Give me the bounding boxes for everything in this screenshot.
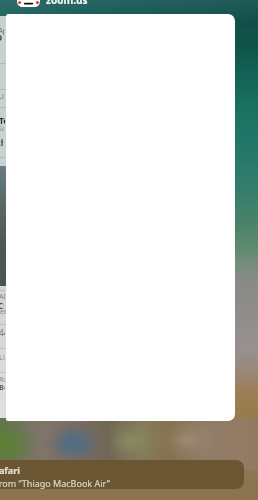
staticText: LinkedIn [0, 352, 5, 362]
staticText: 44 new [0, 327, 5, 338]
staticText: ADOBE [0, 292, 5, 302]
staticText: Sales [0, 124, 4, 134]
staticText: Robert [0, 375, 5, 385]
staticText: Creative [0, 300, 4, 311]
staticText: Tech [0, 115, 5, 127]
staticText: thanks [0, 137, 3, 149]
button[interactable]: Zoom menu bar item [17, 0, 40, 7]
staticText: Safari [0, 464, 20, 476]
staticText: Linked [0, 91, 4, 101]
staticText: Documents [0, 32, 2, 44]
staticText: From “Thiago MacBook Air” [0, 477, 110, 489]
staticText: Apple [0, 25, 4, 35]
staticText: erator [0, 307, 6, 317]
button[interactable]: Safari [0, 460, 244, 489]
staticText: zoom.us [46, 0, 88, 7]
staticText: Bennett [0, 382, 5, 392]
